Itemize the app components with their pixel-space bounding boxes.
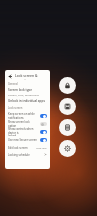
staticText: Locking schedule (8, 153, 30, 157)
staticText: Keep screen on while notifications (8, 112, 35, 119)
button[interactable]: Back (8, 74, 13, 79)
button[interactable]: Edit lock screen (8, 144, 47, 151)
staticText: Edit lock screen (8, 146, 28, 150)
button[interactable]: Show screen lock option (8, 120, 47, 127)
button[interactable] (40, 114, 47, 118)
button[interactable]: Back (8, 73, 47, 80)
staticText: Screen lock type (8, 88, 33, 92)
button[interactable]: Keep screen on while notifications (8, 111, 47, 120)
button[interactable]: Save (59, 98, 76, 115)
staticText: Lock screen (8, 106, 23, 110)
button[interactable]: Lock (59, 77, 76, 94)
button[interactable] (40, 122, 47, 126)
button[interactable]: Locking schedule (8, 151, 47, 158)
button[interactable] (40, 130, 47, 134)
button[interactable]: Screen lock type (8, 88, 47, 96)
staticText: Lock screen & security (15, 73, 47, 80)
button[interactable]: Settings (59, 140, 76, 157)
staticText: Use new Secure screen (8, 138, 37, 142)
staticText: Show screen lock option (8, 120, 38, 127)
staticText: Pattern, Face, Fingerprints (8, 93, 39, 96)
staticText: Unlock in individual apps (8, 99, 45, 103)
staticText: Show controls when device is locked (8, 127, 38, 136)
staticText: General (8, 82, 18, 86)
button[interactable]: Unlock in individual apps (8, 99, 47, 103)
button[interactable]: Use new Secure screen (8, 136, 47, 143)
button[interactable]: Show controls when device is locked (8, 127, 47, 136)
button[interactable]: Document (59, 119, 76, 136)
staticText: Auto-lock (36, 146, 47, 149)
button[interactable] (40, 138, 47, 142)
